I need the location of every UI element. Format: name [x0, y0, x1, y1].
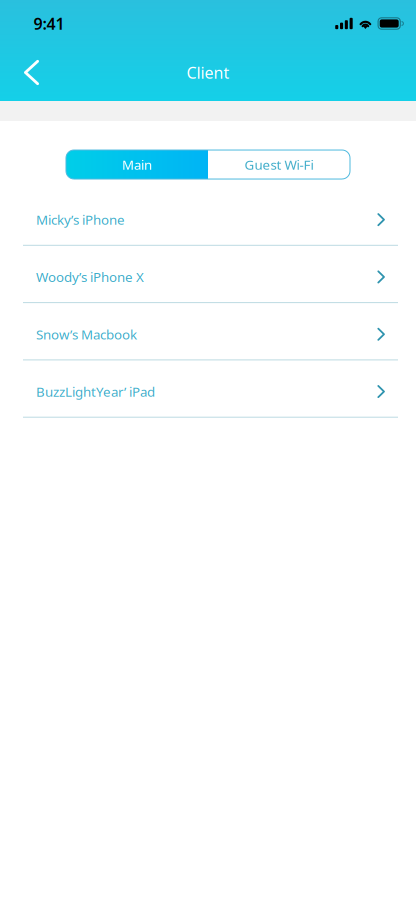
button[interactable]: Main: [66, 150, 208, 179]
button[interactable]: Woody’s iPhone X: [0, 246, 416, 303]
button[interactable]: Snow’s Macbook: [0, 303, 416, 360]
staticText: Main: [122, 156, 152, 173]
staticText: Client: [186, 62, 229, 83]
button[interactable]: Back: [0, 52, 51, 93]
staticText: Micky’s iPhone: [36, 211, 125, 228]
staticText: 9:41: [33, 13, 64, 34]
staticText: Guest Wi-Fi: [244, 156, 313, 173]
staticText: Snow’s Macbook: [36, 325, 137, 343]
staticText: BuzzLightYear’ iPad: [36, 383, 155, 400]
button[interactable]: Guest Wi-Fi: [208, 150, 350, 179]
button[interactable]: BuzzLightYear’ iPad: [0, 360, 416, 418]
staticText: Woody’s iPhone X: [36, 268, 144, 286]
button[interactable]: Micky’s iPhone: [0, 188, 416, 246]
